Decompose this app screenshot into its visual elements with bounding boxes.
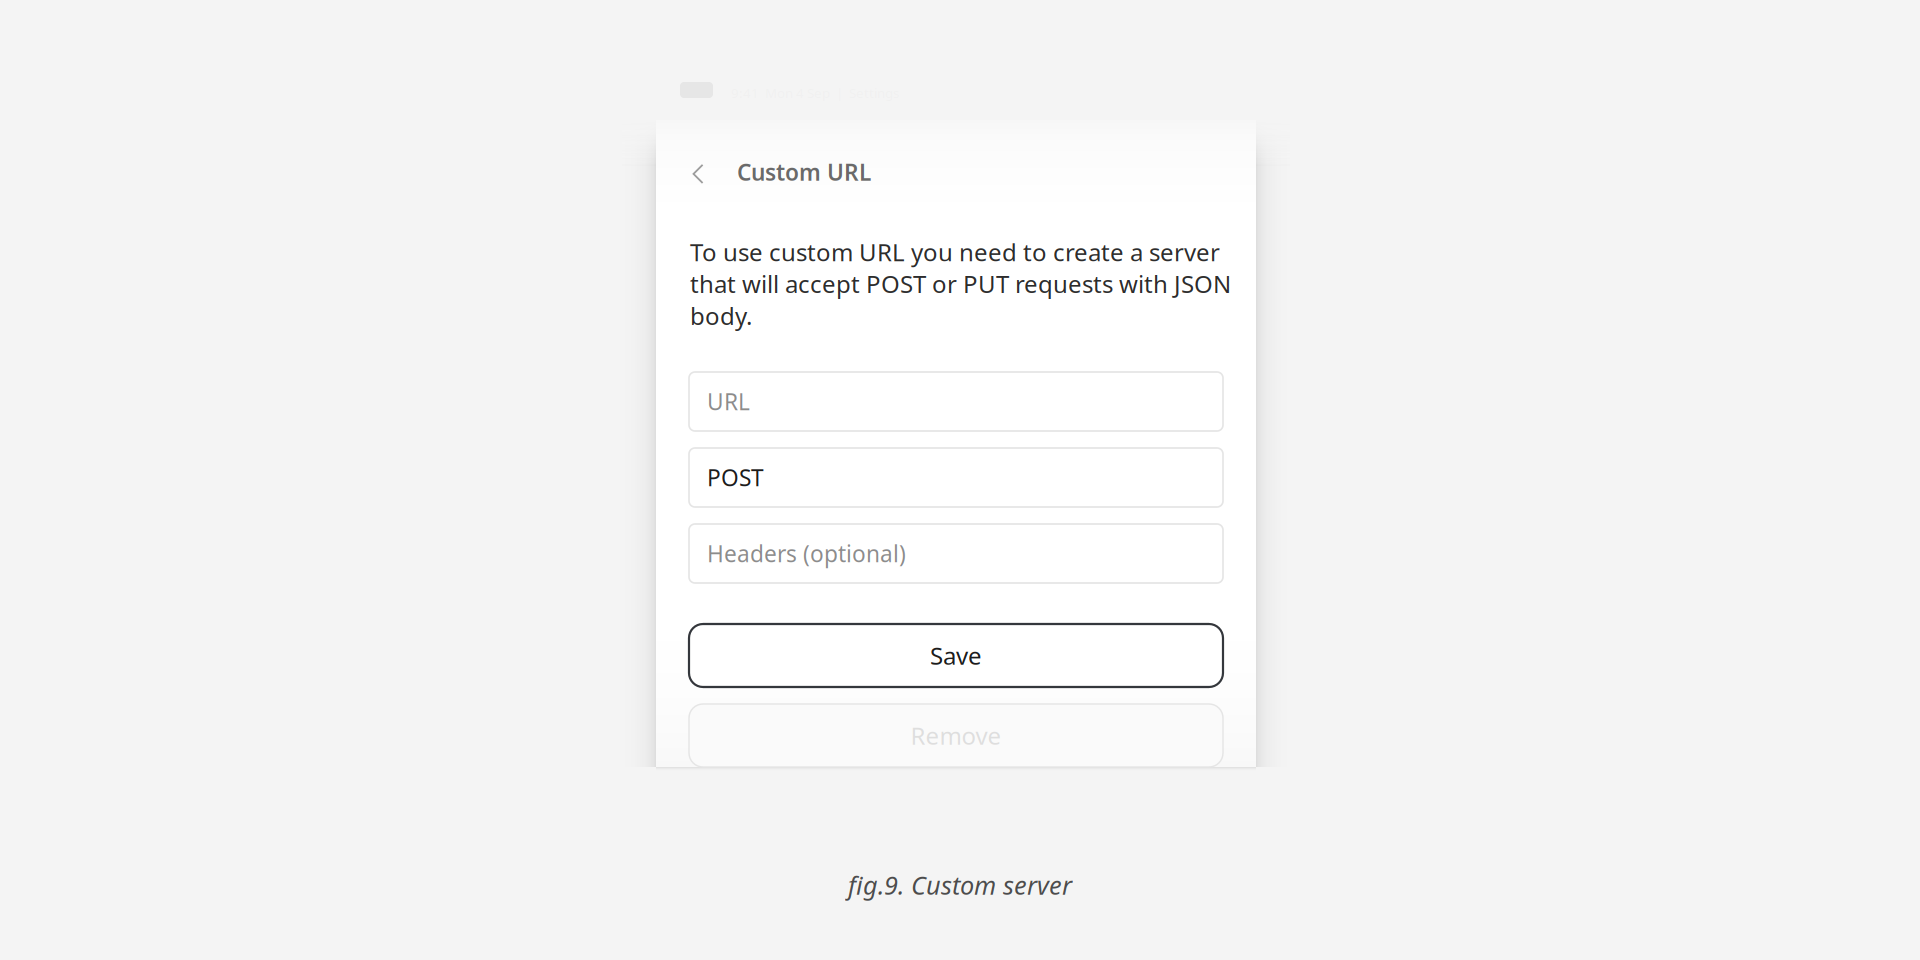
button[interactable]: Remove xyxy=(689,704,1223,767)
button[interactable]: URL xyxy=(689,372,1223,431)
staticText: fig.9. Custom server xyxy=(848,868,1072,902)
staticText: Remove xyxy=(910,720,1001,751)
staticText: URL xyxy=(707,386,750,416)
staticText: Custom URL xyxy=(737,157,871,187)
button[interactable]: Save xyxy=(689,624,1223,687)
staticText: Headers (optional) xyxy=(707,538,906,568)
staticText: Save xyxy=(930,640,982,671)
button[interactable]: Headers (optional) xyxy=(689,524,1223,583)
staticText: To use custom URL you need to create a s… xyxy=(690,236,1231,332)
button[interactable]: POST xyxy=(689,448,1223,507)
staticText: POST xyxy=(707,462,764,492)
button[interactable]: Back xyxy=(676,152,720,196)
